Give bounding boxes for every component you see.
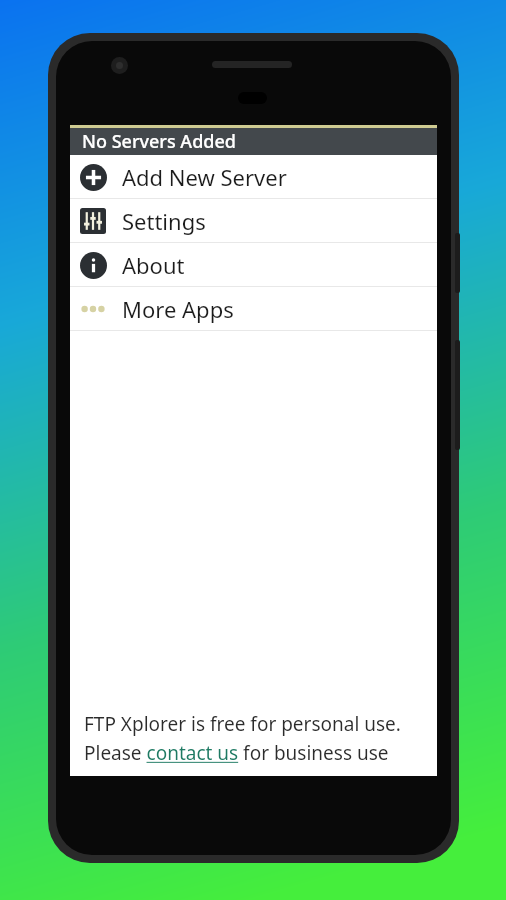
staticText: More Apps: [122, 294, 234, 324]
button[interactable]: About: [70, 243, 437, 286]
other: Add: [80, 164, 107, 191]
button[interactable]: More Apps: [70, 287, 437, 330]
other: Settings: [80, 208, 106, 234]
staticText: FTP Xplorer is free for personal use.: [84, 711, 401, 737]
button[interactable]: Please contact us for business use: [84, 740, 389, 766]
button[interactable]: Settings: [70, 199, 437, 242]
other: About: [80, 252, 107, 279]
staticText: About: [122, 250, 185, 280]
staticText: Add New Server: [122, 162, 287, 192]
staticText: No Servers Added: [82, 129, 236, 154]
staticText: Settings: [122, 206, 206, 236]
other: More Apps: [79, 295, 107, 323]
button[interactable]: Add: [70, 155, 437, 198]
